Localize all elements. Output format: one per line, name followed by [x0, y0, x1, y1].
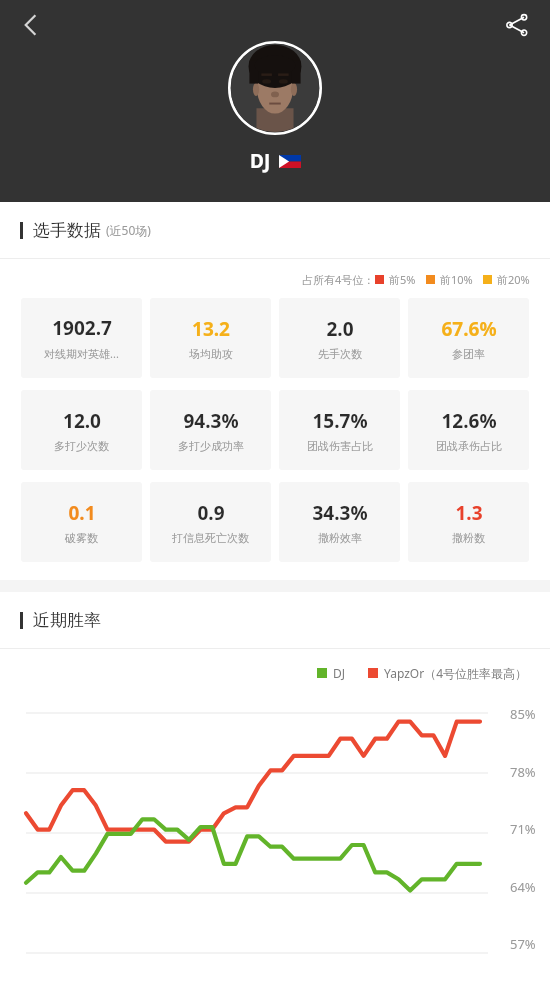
- staticText: 1.3: [455, 500, 483, 526]
- staticText: 团战承伤占比: [436, 439, 502, 453]
- staticText: 12.0: [63, 408, 101, 434]
- button[interactable]: 67.6%: [408, 298, 529, 378]
- staticText: 12.6%: [441, 408, 497, 434]
- staticText: 0.1: [68, 500, 96, 526]
- staticText: 1902.7: [52, 315, 112, 341]
- button[interactable]: 0.1: [21, 482, 142, 562]
- staticText: 场均助攻: [189, 347, 233, 361]
- staticText: 破雾数: [65, 531, 98, 545]
- staticText: 对线期对英雄...: [44, 346, 119, 361]
- staticText: 67.6%: [441, 316, 497, 342]
- button[interactable]: 15.7%: [279, 390, 400, 470]
- staticText: DJ: [250, 148, 271, 174]
- staticText: 撒粉数: [452, 531, 485, 545]
- staticText: DJ: [333, 665, 346, 681]
- button[interactable]: Share: [494, 2, 540, 48]
- button[interactable]: 34.3%: [279, 482, 400, 562]
- button[interactable]: 12.6%: [408, 390, 529, 470]
- staticText: 占所有4号位：: [302, 272, 375, 287]
- button[interactable]: 13.2: [150, 298, 271, 378]
- button[interactable]: 2.0: [279, 298, 400, 378]
- button[interactable]: 1902.7: [21, 298, 142, 378]
- staticText: 34.3%: [312, 500, 368, 526]
- staticText: 78%: [510, 763, 536, 781]
- staticText: 前10%: [440, 272, 473, 287]
- button[interactable]: 94.3%: [150, 390, 271, 470]
- staticText: 94.3%: [183, 408, 239, 434]
- staticText: 打信息死亡次数: [172, 531, 249, 545]
- staticText: 前5%: [389, 272, 416, 287]
- button[interactable]: 0.9: [150, 482, 271, 562]
- staticText: 先手次数: [318, 347, 362, 361]
- staticText: 64%: [510, 878, 536, 896]
- staticText: 团战伤害占比: [307, 439, 373, 453]
- staticText: 参团率: [452, 347, 485, 361]
- staticText: (近50场): [106, 222, 151, 238]
- staticText: 近期胜率: [33, 610, 101, 631]
- staticText: 71%: [510, 820, 536, 838]
- staticText: 前20%: [497, 272, 530, 287]
- staticText: 多打少成功率: [178, 439, 244, 453]
- button[interactable]: Back: [8, 2, 54, 48]
- staticText: 2.0: [326, 316, 354, 342]
- staticText: 15.7%: [312, 408, 368, 434]
- staticText: 57%: [510, 935, 536, 953]
- staticText: 0.9: [197, 500, 225, 526]
- staticText: YapzOr（4号位胜率最高）: [384, 665, 528, 681]
- staticText: 撒粉效率: [318, 531, 362, 545]
- staticText: 85%: [510, 705, 536, 723]
- staticText: 13.2: [192, 316, 230, 342]
- button[interactable]: 12.0: [21, 390, 142, 470]
- staticText: 多打少次数: [54, 439, 109, 453]
- staticText: 选手数据: [33, 220, 101, 241]
- button[interactable]: 1.3: [408, 482, 529, 562]
